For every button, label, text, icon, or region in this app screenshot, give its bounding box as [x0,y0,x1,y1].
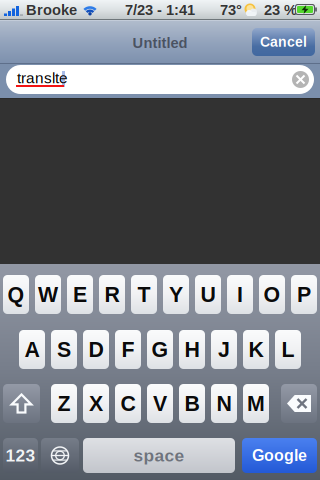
staticText: P [297,283,311,306]
staticText: H [184,338,199,361]
staticText: L [281,338,294,361]
button[interactable]: L [275,330,301,369]
button[interactable]: W [35,275,61,314]
staticText: 7/23 - 1:41 [125,2,195,18]
staticText: U [200,283,215,306]
button[interactable]: I [227,275,253,314]
button[interactable]: Z [51,384,77,423]
staticText: D [88,338,103,361]
button[interactable]: K [243,330,269,369]
button[interactable]: U [195,275,221,314]
button[interactable]: Shift [3,384,40,423]
staticText: K [248,338,263,361]
button[interactable]: C [115,384,141,423]
staticText: Z [57,392,70,415]
staticText: Google [252,447,307,464]
button[interactable]: M [243,384,269,423]
button[interactable]: Q [3,275,29,314]
staticText: O [263,283,280,306]
button[interactable]: Cancel [252,28,315,56]
staticText: F [121,338,134,361]
staticText: R [104,283,119,306]
staticText: X [89,392,103,415]
staticText: Y [169,283,183,306]
button[interactable]: A [19,330,45,369]
button[interactable]: J [211,330,237,369]
staticText: V [153,392,167,415]
button[interactable]: B [179,384,205,423]
button[interactable]: E [67,275,93,314]
staticText: G [151,338,168,361]
button[interactable]: D [83,330,109,369]
staticText: I [237,283,243,306]
button[interactable]: S [51,330,77,369]
staticText: A [24,338,39,361]
staticText: B [184,392,199,415]
staticText: Q [7,283,24,306]
button[interactable]: 123 [3,438,38,473]
button[interactable]: N [211,384,237,423]
button[interactable]: F [115,330,141,369]
staticText: 73° [220,2,242,18]
button[interactable]: H [179,330,205,369]
staticText: C [120,392,135,415]
staticText: 23 % [264,2,297,18]
staticText: S [57,338,71,361]
staticText: W [38,283,58,306]
staticText: J [218,338,230,361]
button[interactable]: Next keyboard [41,438,79,473]
button[interactable]: Clear text [292,71,309,88]
button[interactable]: V [147,384,173,423]
button[interactable]: R [99,275,125,314]
staticText: 123 [5,446,35,465]
staticText: N [216,392,231,415]
staticText: space [133,446,184,465]
button[interactable]: P [291,275,317,314]
staticText: E [73,283,87,306]
staticText: Cancel [260,34,307,50]
button[interactable]: O [259,275,285,314]
staticText: translte [17,69,68,86]
staticText: Untitled [132,35,187,51]
button[interactable]: X [83,384,109,423]
staticText: Brooke [26,2,77,18]
staticText: M [247,392,265,415]
button[interactable]: Y [163,275,189,314]
button[interactable]: G [147,330,173,369]
staticText: T [137,283,150,306]
button[interactable]: space [83,438,235,473]
button[interactable]: Delete [281,384,317,423]
button[interactable]: Google [242,438,317,473]
button[interactable]: T [131,275,157,314]
